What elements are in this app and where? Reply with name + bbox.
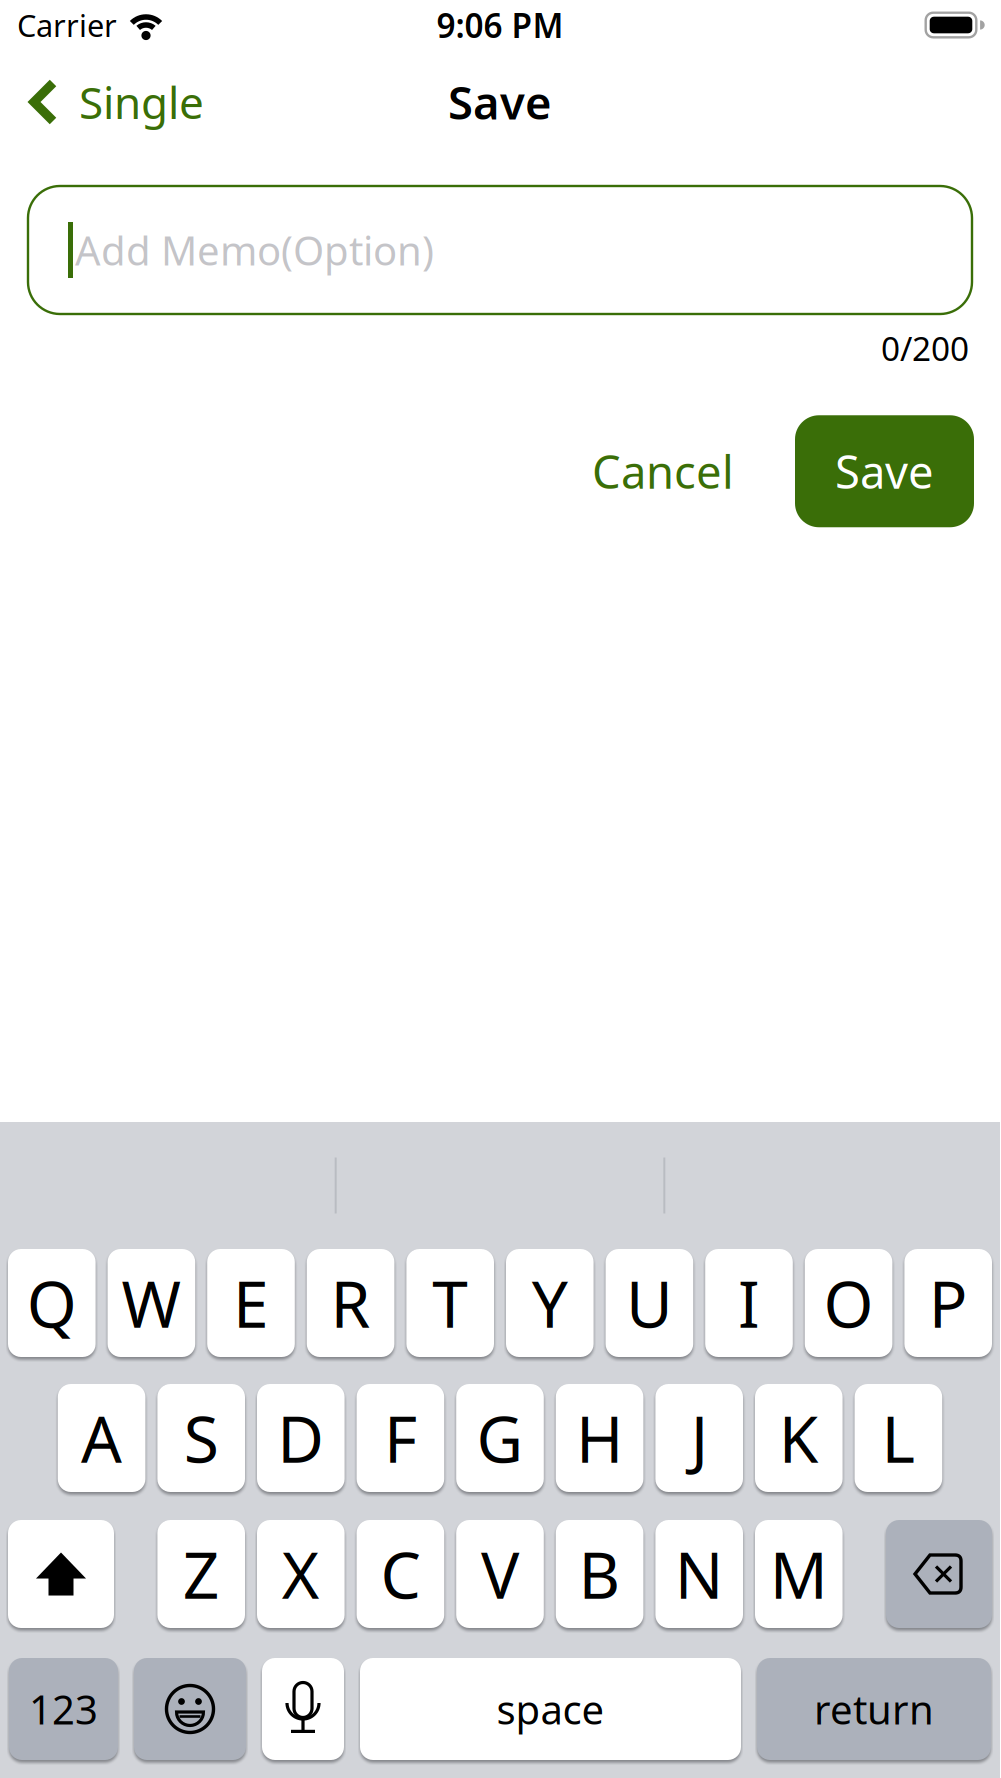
staticText: S bbox=[184, 1395, 219, 1480]
staticText: B bbox=[579, 1531, 621, 1616]
button[interactable]: W bbox=[108, 1249, 195, 1357]
staticText: T bbox=[432, 1260, 468, 1345]
button[interactable]: Back bbox=[30, 73, 204, 131]
staticText: E bbox=[233, 1260, 269, 1345]
button[interactable]: K bbox=[755, 1384, 843, 1492]
button[interactable]: P bbox=[904, 1249, 992, 1357]
staticText: return bbox=[814, 1682, 934, 1735]
staticText: Save bbox=[835, 441, 934, 501]
staticText: U bbox=[626, 1260, 673, 1345]
staticText: Carrier bbox=[17, 5, 117, 45]
button[interactable]: Shift bbox=[8, 1520, 114, 1628]
staticText: P bbox=[929, 1260, 968, 1345]
staticText: G bbox=[476, 1395, 523, 1480]
button[interactable]: Delete bbox=[886, 1520, 992, 1628]
button[interactable]: return bbox=[757, 1658, 991, 1760]
staticText: Add Memo(Option) bbox=[75, 223, 434, 276]
button[interactable]: G bbox=[456, 1384, 544, 1492]
staticText: Single bbox=[79, 73, 204, 131]
button[interactable]: C bbox=[357, 1520, 444, 1628]
button[interactable]: Save bbox=[795, 415, 974, 527]
staticText: 9:06 PM bbox=[436, 3, 563, 47]
button[interactable]: N bbox=[655, 1520, 743, 1628]
button[interactable]: S bbox=[157, 1384, 245, 1492]
button[interactable]: Cancel bbox=[592, 441, 734, 501]
button[interactable]: R bbox=[307, 1249, 394, 1357]
button[interactable]: U bbox=[606, 1249, 693, 1357]
button[interactable]: H bbox=[556, 1384, 643, 1492]
button[interactable]: Add Memo bbox=[28, 186, 972, 314]
staticText: K bbox=[779, 1395, 819, 1480]
button[interactable]: J bbox=[655, 1384, 743, 1492]
button[interactable]: space bbox=[360, 1658, 741, 1760]
staticText: D bbox=[277, 1395, 324, 1480]
staticText: L bbox=[881, 1395, 915, 1480]
button[interactable]: X bbox=[257, 1520, 345, 1628]
staticText: Save bbox=[448, 72, 552, 132]
staticText: J bbox=[691, 1395, 708, 1480]
staticText: 123 bbox=[29, 1682, 98, 1735]
button[interactable]: B bbox=[556, 1520, 643, 1628]
staticText: X bbox=[282, 1531, 320, 1616]
button[interactable]: Q bbox=[8, 1249, 96, 1357]
staticText: 0/200 bbox=[881, 326, 969, 370]
staticText: Y bbox=[532, 1260, 568, 1345]
staticText: O bbox=[824, 1260, 874, 1345]
button[interactable]: Z bbox=[157, 1520, 245, 1628]
button[interactable]: M bbox=[755, 1520, 843, 1628]
staticText: Z bbox=[183, 1531, 220, 1616]
button[interactable]: I bbox=[705, 1249, 793, 1357]
button[interactable]: L bbox=[855, 1384, 942, 1492]
button[interactable]: V bbox=[456, 1520, 544, 1628]
button[interactable]: 123 bbox=[9, 1658, 118, 1760]
staticText: M bbox=[770, 1531, 828, 1616]
button[interactable]: E bbox=[207, 1249, 295, 1357]
staticText: R bbox=[331, 1260, 371, 1345]
button[interactable]: T bbox=[406, 1249, 494, 1357]
staticText: A bbox=[81, 1395, 122, 1480]
button[interactable]: D bbox=[257, 1384, 345, 1492]
staticText: V bbox=[481, 1531, 519, 1616]
button[interactable]: Dictate bbox=[262, 1658, 344, 1760]
button[interactable]: Y bbox=[506, 1249, 594, 1357]
staticText: W bbox=[121, 1260, 181, 1345]
button[interactable]: Emoji bbox=[134, 1658, 246, 1760]
staticText: H bbox=[576, 1395, 623, 1480]
staticText: N bbox=[675, 1531, 724, 1616]
staticText: Cancel bbox=[592, 441, 734, 501]
staticText: C bbox=[380, 1531, 420, 1616]
staticText: F bbox=[384, 1395, 417, 1480]
button[interactable]: F bbox=[357, 1384, 444, 1492]
button[interactable]: O bbox=[805, 1249, 892, 1357]
staticText: space bbox=[496, 1682, 604, 1735]
staticText: I bbox=[738, 1260, 760, 1345]
button[interactable]: A bbox=[58, 1384, 145, 1492]
staticText: Q bbox=[27, 1260, 77, 1345]
